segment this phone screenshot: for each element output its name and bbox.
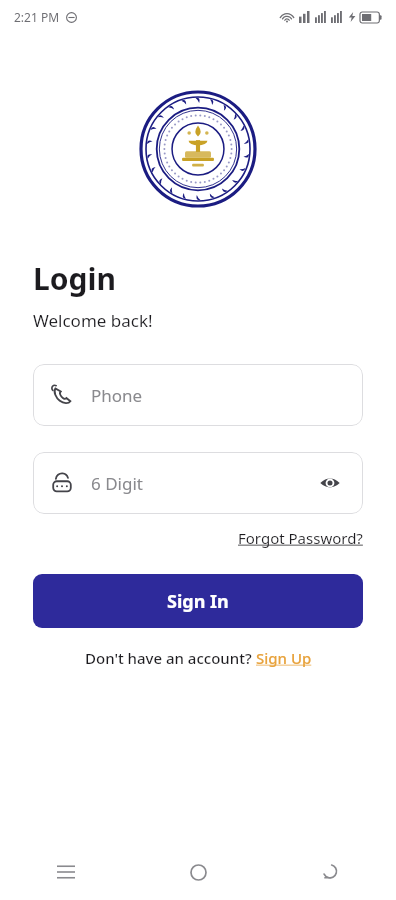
button[interactable]: 6 Digit	[33, 452, 363, 514]
button[interactable]: Sign In	[33, 574, 363, 628]
button[interactable]: Show password	[315, 468, 345, 498]
staticText: 2:21 PM	[14, 9, 60, 25]
button[interactable]: Home	[132, 844, 264, 900]
staticText: 6 Digit	[91, 472, 315, 495]
button[interactable]: Phone	[33, 364, 363, 426]
button[interactable]: Forgot Password?	[238, 528, 363, 548]
staticText: Phone	[91, 384, 143, 407]
button[interactable]: Don't have an account?	[85, 648, 312, 668]
staticText: Login	[33, 258, 116, 299]
button[interactable]: Recent apps	[0, 844, 132, 900]
staticText: Welcome back!	[33, 309, 153, 332]
button[interactable]: Back	[264, 844, 396, 900]
staticText: Sign In	[167, 589, 229, 614]
staticText: Forgot Password?	[238, 528, 363, 548]
staticText: Sign Up	[256, 648, 312, 668]
staticText: Don't have an account?	[85, 648, 256, 668]
